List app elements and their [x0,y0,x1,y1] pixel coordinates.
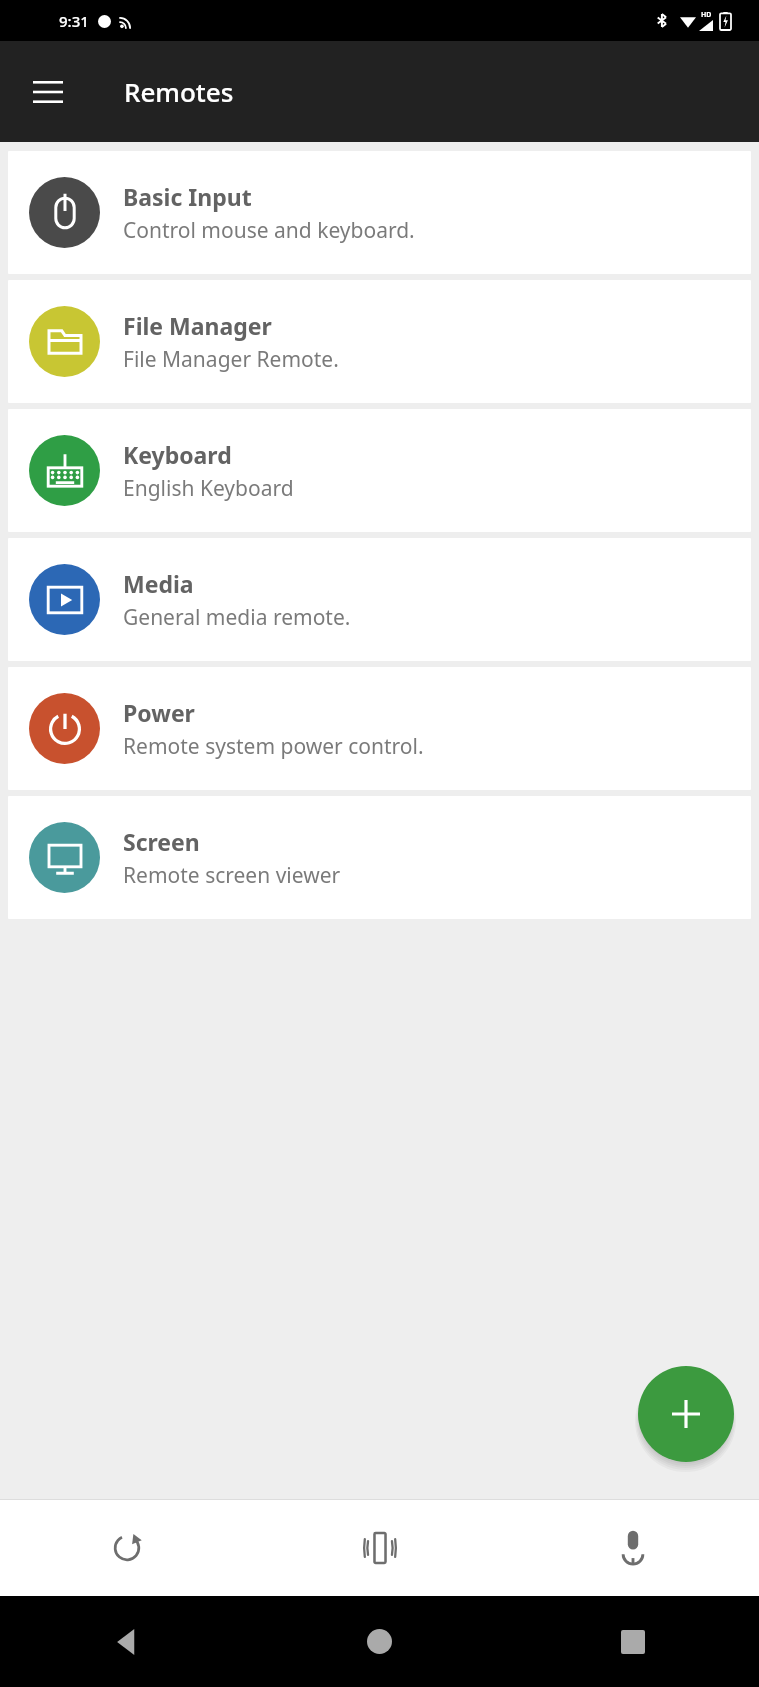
staticText: File Manager Remote. [123,345,339,374]
staticText: English Keyboard [123,474,294,503]
button[interactable]: Back [0,1596,253,1687]
staticText: Media [123,568,194,599]
button[interactable]: Add remote [638,1366,734,1462]
staticText: Remote screen viewer [123,861,341,890]
button[interactable]: File Manager [8,280,751,403]
staticText: File Manager [123,310,272,341]
button[interactable]: Vibrate [253,1499,506,1596]
staticText: HD [701,10,712,20]
button[interactable]: Keyboard [8,409,751,532]
button[interactable]: Media [8,538,751,661]
staticText: Control mouse and keyboard. [123,216,415,245]
button[interactable]: Screen [8,796,751,919]
button[interactable]: Home [253,1596,506,1687]
staticText: Remotes [124,74,234,109]
staticText: Basic Input [123,181,252,212]
button[interactable]: Voice input [506,1499,759,1596]
button[interactable]: Basic Input [8,151,751,274]
staticText: Screen [123,826,200,857]
staticText: 9:31 [59,11,89,31]
staticText: General media remote. [123,603,351,632]
staticText: Remote system power control. [123,732,424,761]
button[interactable]: Refresh [0,1499,253,1596]
staticText: Power [123,697,195,728]
button[interactable]: Recent apps [506,1596,759,1687]
button[interactable]: Power [8,667,751,790]
staticText: Keyboard [123,439,232,470]
button[interactable]: Open navigation menu [19,63,77,121]
